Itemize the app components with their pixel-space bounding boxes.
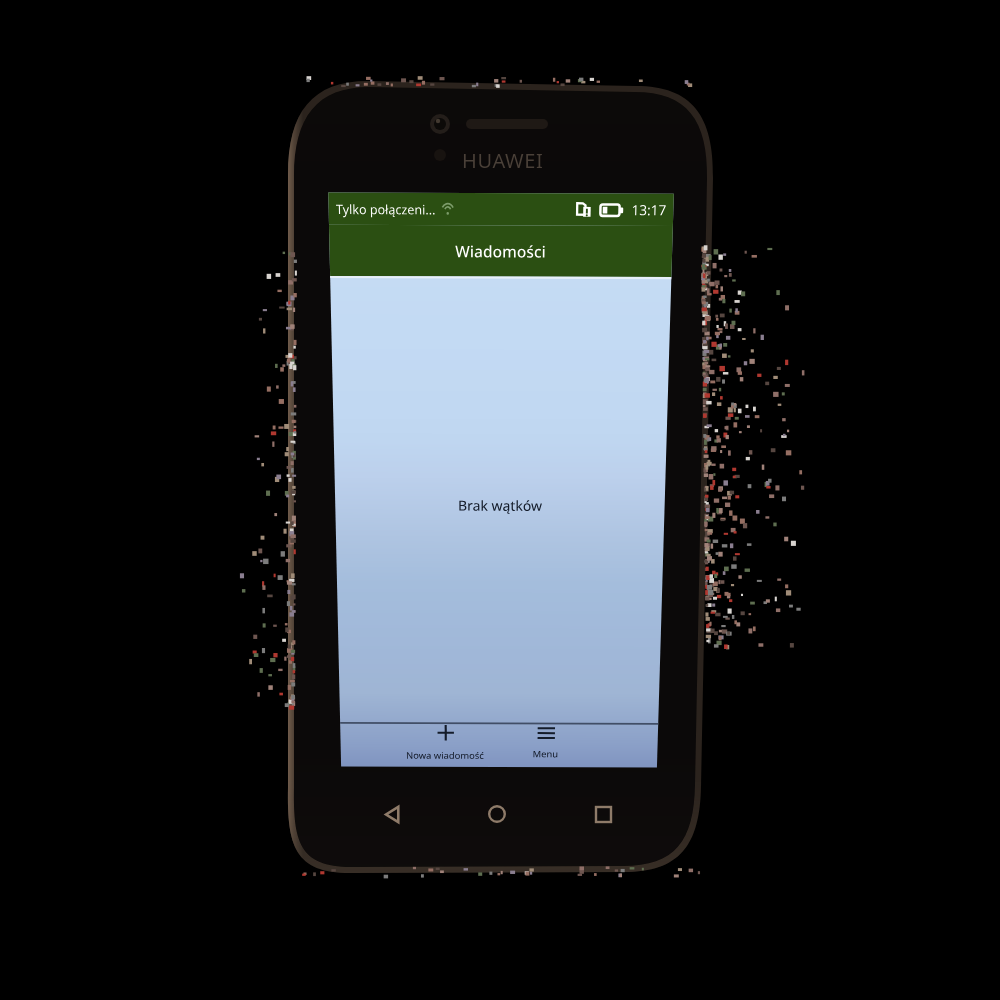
staticText: Menu — [533, 748, 559, 760]
button[interactable]: Back — [370, 792, 414, 836]
staticText: Nowa wiadomość — [406, 750, 485, 762]
button[interactable]: Home — [475, 792, 519, 836]
staticText: 13:17 — [631, 200, 667, 219]
button[interactable]: Recents — [581, 792, 625, 836]
staticText: Tylko połączeni... — [336, 200, 436, 218]
button[interactable]: Menu — [495, 724, 596, 762]
staticText: Brak wątków — [458, 496, 543, 515]
staticText: HUAWEI — [462, 147, 544, 174]
staticText: Wiadomości — [455, 240, 547, 262]
button[interactable]: Nowa wiadomość — [395, 724, 495, 762]
